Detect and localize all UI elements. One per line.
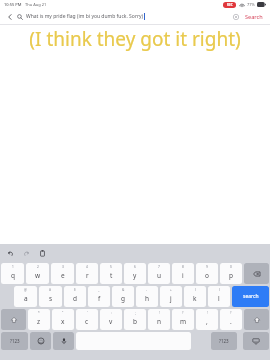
- staticText: What is my pride flag (im bi you dumb fu…: [26, 13, 144, 20]
- button[interactable]: Emoji: [30, 332, 51, 350]
- button[interactable]: search: [232, 286, 269, 307]
- staticText: ,: [206, 317, 208, 326]
- button[interactable]: $: [64, 286, 86, 307]
- button[interactable]: ;: [124, 309, 146, 330]
- staticText: :: [111, 311, 112, 315]
- staticText: 1: [12, 265, 14, 269]
- button[interactable]: Shift: [244, 309, 269, 330]
- staticText: q: [11, 271, 15, 280]
- button[interactable]: @: [14, 286, 37, 307]
- staticText: e: [61, 271, 65, 280]
- button[interactable]: #: [39, 286, 62, 307]
- staticText: h: [145, 294, 150, 303]
- button[interactable]: Paste: [37, 248, 48, 259]
- button[interactable]: Search: [242, 10, 266, 23]
- button[interactable]: ?123: [1, 332, 28, 350]
- button[interactable]: Backspace: [244, 263, 269, 284]
- staticText: l: [218, 294, 220, 303]
- button[interactable]: Shift: [1, 309, 26, 330]
- button[interactable]: &: [112, 286, 134, 307]
- staticText: y: [133, 271, 137, 280]
- staticText: *: [38, 311, 40, 315]
- button[interactable]: 5: [100, 263, 122, 284]
- staticText: #: [49, 288, 52, 292]
- button[interactable]: ): [208, 286, 230, 307]
- staticText: 2: [37, 265, 39, 269]
- button[interactable]: ": [52, 309, 74, 330]
- button[interactable]: ?: [172, 309, 194, 330]
- button[interactable]: 7: [148, 263, 170, 284]
- button[interactable]: (: [184, 286, 206, 307]
- button[interactable]: ?123: [211, 332, 237, 350]
- staticText: ;: [135, 311, 136, 315]
- button[interactable]: 8: [172, 263, 194, 284]
- button[interactable]: Voice input: [53, 332, 74, 350]
- staticText: j: [170, 294, 172, 303]
- staticText: +: [170, 288, 172, 292]
- button[interactable]: Redo: [21, 248, 32, 259]
- staticText: 3: [62, 265, 64, 269]
- button[interactable]: Undo: [5, 248, 16, 259]
- button[interactable]: ': [76, 309, 98, 330]
- staticText: m: [180, 317, 187, 326]
- staticText: ": [62, 311, 64, 315]
- button[interactable]: What is my pride flag (im bi you dumb fu…: [26, 9, 230, 24]
- staticText: r: [86, 271, 89, 280]
- staticText: 5: [110, 265, 112, 269]
- staticText: ?123: [10, 338, 20, 344]
- staticText: ?: [230, 311, 232, 315]
- staticText: 4: [86, 265, 88, 269]
- staticText: Thu Aug 21: [25, 2, 47, 7]
- staticText: _: [98, 288, 100, 292]
- staticText: 9: [206, 265, 208, 269]
- staticText: c: [85, 317, 89, 326]
- staticText: !: [207, 311, 208, 315]
- staticText: v: [109, 317, 113, 326]
- staticText: a: [24, 294, 28, 303]
- staticText: 7: [158, 265, 160, 269]
- staticText: i: [182, 271, 184, 280]
- staticText: ?: [182, 311, 184, 315]
- staticText: 8: [182, 265, 184, 269]
- staticText: &: [122, 288, 125, 292]
- staticText: REC: [227, 3, 233, 7]
- button[interactable]: 2: [26, 263, 49, 284]
- button[interactable]: :: [100, 309, 122, 330]
- staticText: search: [243, 293, 259, 300]
- staticText: (I think they got it right): [0, 26, 270, 52]
- button[interactable]: _: [88, 286, 110, 307]
- staticText: n: [157, 317, 162, 326]
- button[interactable]: -: [136, 286, 158, 307]
- button[interactable]: 6: [124, 263, 146, 284]
- button[interactable]: +: [160, 286, 182, 307]
- staticText: @: [24, 288, 27, 292]
- staticText: $: [74, 288, 76, 292]
- button[interactable]: !: [196, 309, 218, 330]
- button[interactable]: *: [28, 309, 50, 330]
- staticText: s: [49, 294, 53, 303]
- button[interactable]: ?: [220, 309, 242, 330]
- staticText: z: [37, 317, 41, 326]
- button[interactable]: 4: [76, 263, 98, 284]
- staticText: x: [61, 317, 65, 326]
- button[interactable]: Back: [4, 11, 15, 22]
- button[interactable]: Clear search: [230, 11, 241, 22]
- staticText: 6: [134, 265, 136, 269]
- staticText: Search: [245, 13, 263, 20]
- staticText: d: [73, 294, 77, 303]
- staticText: p: [229, 271, 233, 280]
- staticText: k: [193, 294, 197, 303]
- button[interactable]: !: [148, 309, 170, 330]
- button[interactable]: 3: [51, 263, 74, 284]
- staticText: u: [157, 271, 162, 280]
- staticText: (: [195, 288, 196, 292]
- button[interactable]: 1: [1, 263, 24, 284]
- button[interactable]: 0: [220, 263, 242, 284]
- staticText: 77%: [247, 2, 255, 7]
- button[interactable]: Hide keyboard: [243, 332, 269, 350]
- staticText: .: [230, 317, 232, 326]
- button[interactable]: 9: [196, 263, 218, 284]
- staticText: f: [98, 294, 101, 303]
- staticText: b: [133, 317, 137, 326]
